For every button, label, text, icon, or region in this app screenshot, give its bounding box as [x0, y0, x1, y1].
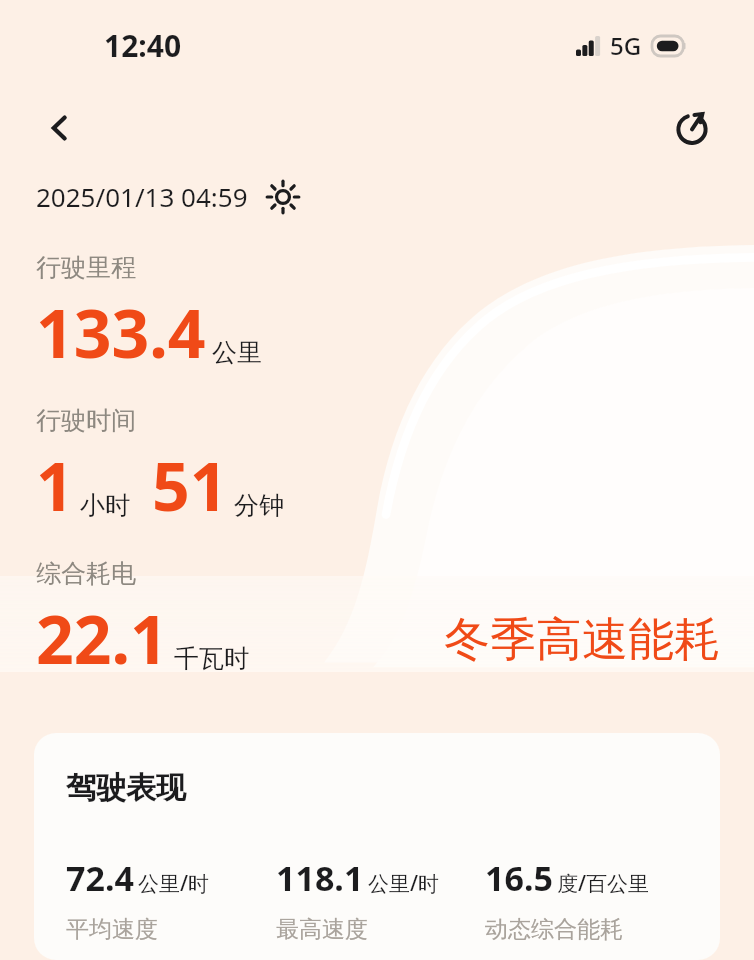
staticText: 驾驶表现 — [66, 769, 186, 807]
staticText: 行驶里程 — [36, 252, 136, 283]
staticText: 公里/时 — [368, 869, 440, 898]
staticText: 5G — [610, 29, 642, 62]
staticText: 综合耗电 — [36, 558, 136, 589]
staticText: 16.5 — [485, 855, 553, 901]
staticText: 公里/时 — [138, 869, 210, 898]
staticText: 度/百公里 — [557, 869, 650, 898]
staticText: 千瓦时 — [174, 643, 249, 674]
staticText: 公里 — [212, 337, 262, 368]
staticText: 动态综合能耗 — [485, 915, 623, 944]
staticText: 分钟 — [234, 490, 284, 521]
staticText: 1 — [36, 440, 74, 530]
staticText: 2025/01/13 04:59 — [36, 179, 248, 214]
staticText: 冬季高速能耗 — [444, 611, 720, 669]
staticText: 22.1 — [36, 593, 168, 683]
staticText: 72.4 — [66, 855, 134, 901]
staticText: 133.4 — [36, 287, 206, 377]
staticText: 118.1 — [276, 855, 364, 901]
staticText: 平均速度 — [66, 915, 158, 944]
button[interactable]: 驾驶表现 — [34, 733, 720, 960]
button[interactable]: Back — [34, 102, 86, 154]
staticText: 51 — [152, 440, 228, 530]
staticText: 12:40 — [104, 25, 182, 66]
staticText: 行驶时间 — [36, 405, 136, 436]
button[interactable]: Share — [664, 100, 720, 156]
staticText: 小时 — [80, 490, 130, 521]
staticText: 最高速度 — [276, 915, 368, 944]
